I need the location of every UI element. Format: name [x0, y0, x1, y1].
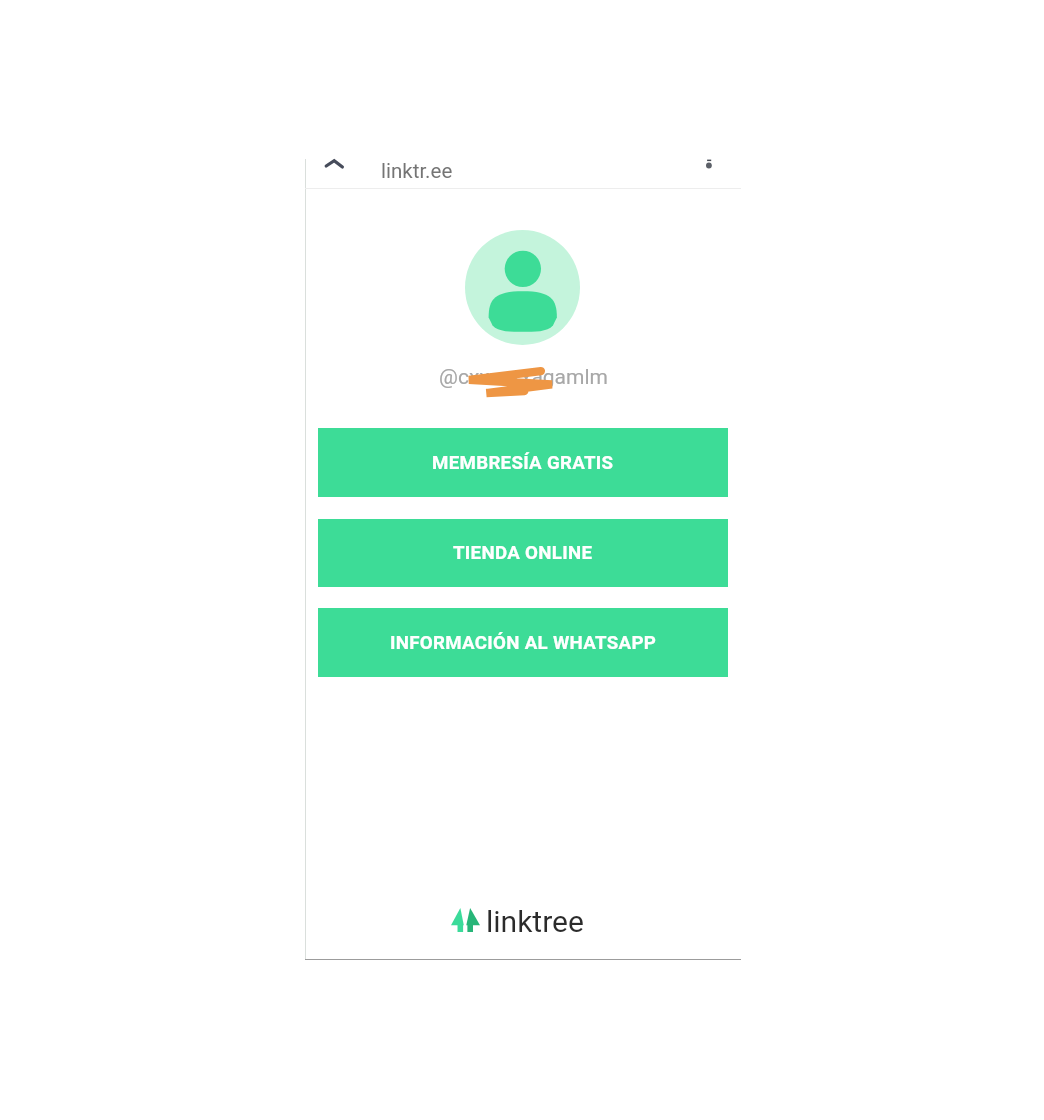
staticText: TIENDA ONLINE: [453, 542, 593, 564]
button[interactable]: More options: [698, 152, 722, 178]
button[interactable]: MEMBRESÍA GRATIS: [318, 428, 728, 497]
button[interactable]: TIENDA ONLINE: [318, 519, 728, 587]
staticText: MEMBRESÍA GRATIS: [432, 452, 614, 474]
staticText: linktree: [486, 904, 584, 939]
button[interactable]: Collapse: [316, 152, 350, 178]
staticText: @cxxxxxxagamlm: [439, 365, 608, 390]
button[interactable]: INFORMACIÓN AL WHATSAPP: [318, 608, 728, 677]
button[interactable]: linktree: [448, 900, 588, 942]
button[interactable]: Profile picture: [465, 230, 580, 345]
button[interactable]: linktr.ee: [381, 159, 453, 183]
staticText: INFORMACIÓN AL WHATSAPP: [390, 632, 657, 654]
